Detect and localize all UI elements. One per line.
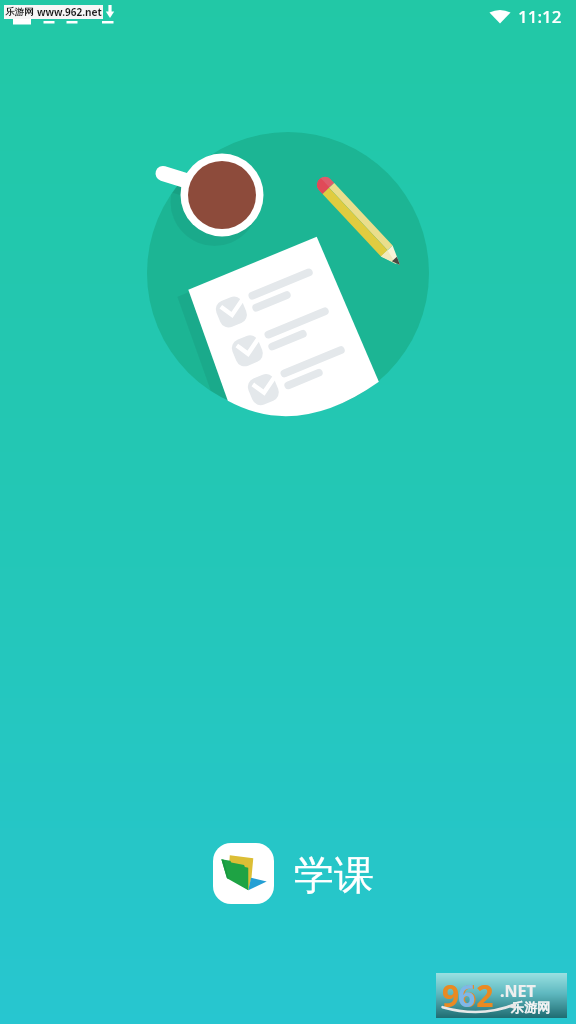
staticText: www.962.net — [37, 5, 102, 19]
staticText: 962 — [442, 975, 494, 1016]
staticText: 6 — [458, 975, 476, 1016]
button[interactable]: 学课 — [213, 843, 374, 904]
staticText: .NET — [500, 980, 536, 1002]
staticText: 11:12 — [518, 5, 562, 28]
staticText: 乐游网 — [511, 999, 550, 1015]
other: Wi-Fi — [489, 7, 511, 25]
staticText: 乐游网 — [5, 6, 34, 18]
staticText: 学课 — [294, 850, 374, 900]
